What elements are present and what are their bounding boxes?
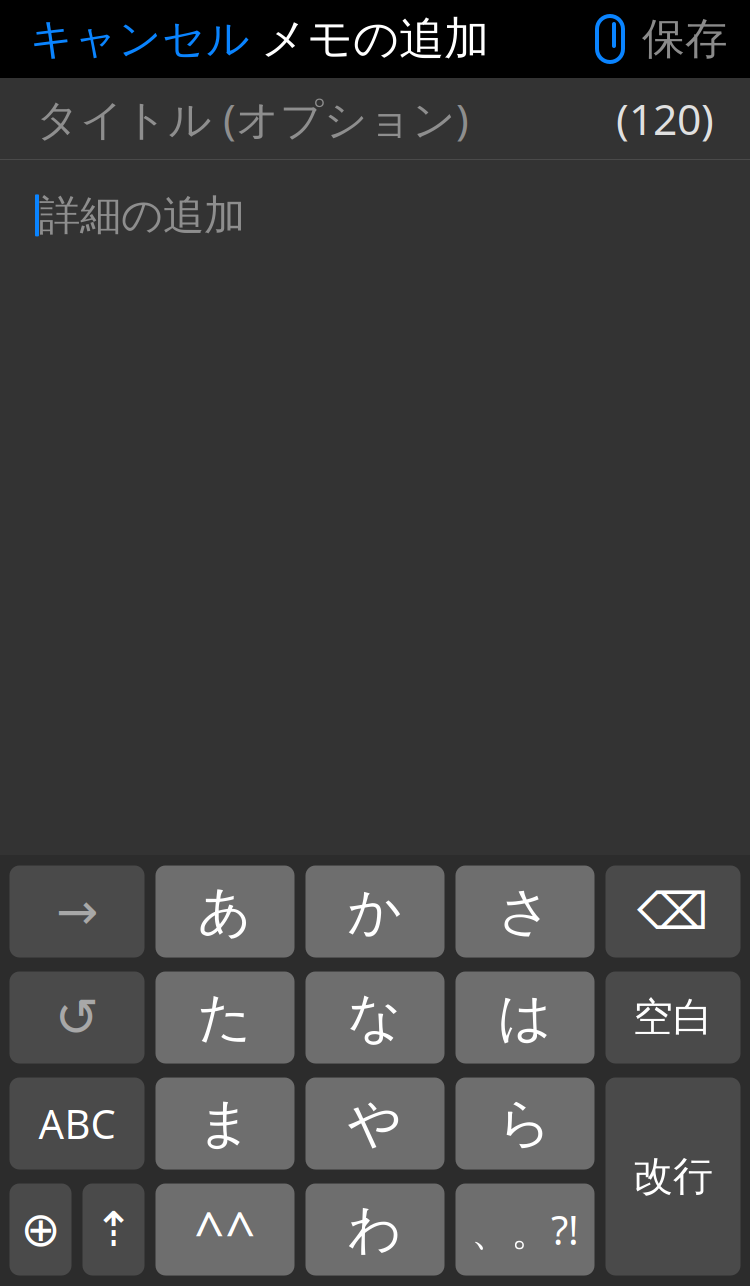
button[interactable]: ら <box>455 1077 594 1169</box>
staticText: → <box>56 883 98 940</box>
button[interactable]: 空白 <box>605 971 740 1063</box>
staticText: メモの追加 <box>261 11 489 67</box>
button[interactable]: 音声入力 <box>82 1183 144 1275</box>
button[interactable]: ABC キーボード <box>9 1077 144 1169</box>
button[interactable]: 次候補 <box>9 865 144 957</box>
staticText: さ <box>497 879 552 944</box>
staticText: キャンセル <box>30 13 250 65</box>
button[interactable]: ^^ <box>155 1183 294 1275</box>
button[interactable]: タイトル (オプション) <box>0 78 750 159</box>
staticText: わ <box>347 1197 402 1262</box>
button[interactable]: 詳細の追加 <box>0 160 750 855</box>
button[interactable]: 、。?! <box>455 1183 594 1275</box>
staticText: ^^ <box>194 1194 256 1265</box>
button[interactable]: な <box>305 971 444 1063</box>
button[interactable]: 改行 <box>605 1077 740 1275</box>
staticText: や <box>347 1091 402 1156</box>
staticText: た <box>197 985 252 1050</box>
staticText: か <box>347 879 402 944</box>
staticText: 改行 <box>633 1152 713 1201</box>
button[interactable]: や <box>305 1077 444 1169</box>
button[interactable]: ま <box>155 1077 294 1169</box>
button[interactable]: あ <box>155 865 294 957</box>
button[interactable]: 次のキーボード <box>9 1183 71 1275</box>
staticText: 詳細の追加 <box>39 190 245 241</box>
button[interactable]: わ <box>305 1183 444 1275</box>
staticText: 空白 <box>633 993 713 1042</box>
staticText: ⇡ <box>93 1202 133 1257</box>
staticText: は <box>497 985 552 1050</box>
staticText: ら <box>497 1091 552 1156</box>
button[interactable]: た <box>155 971 294 1063</box>
staticText: ま <box>197 1091 252 1156</box>
staticText: な <box>347 985 402 1050</box>
button[interactable]: 削除 <box>605 865 740 957</box>
staticText: ⊕ <box>20 1202 60 1257</box>
staticText: ↺ <box>54 987 99 1048</box>
button[interactable]: 取り消し <box>9 971 144 1063</box>
staticText: (120) <box>616 90 714 147</box>
button[interactable]: 保存 <box>566 0 750 78</box>
staticText: ⌫ <box>637 883 709 940</box>
staticText: 、。?! <box>471 1203 579 1256</box>
button[interactable]: さ <box>455 865 594 957</box>
staticText: 保存 <box>642 13 728 65</box>
button[interactable]: は <box>455 971 594 1063</box>
button[interactable]: キャンセル <box>0 0 280 78</box>
staticText: ABC <box>38 1097 115 1150</box>
staticText: タイトル (オプション) <box>36 90 469 147</box>
button[interactable]: か <box>305 865 444 957</box>
staticText: あ <box>197 879 252 944</box>
